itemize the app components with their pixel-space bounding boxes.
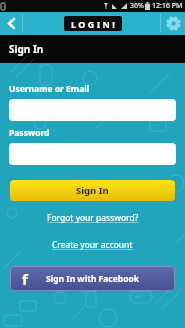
button[interactable]: Create your account [52, 239, 133, 251]
button[interactable]: f [10, 266, 175, 291]
button[interactable]: Forgot your password? [47, 212, 139, 224]
button[interactable] [9, 143, 176, 165]
staticText: L O G I N ! [71, 18, 115, 30]
staticText: Sign In [76, 184, 109, 197]
button[interactable] [9, 99, 176, 121]
staticText: Username or Email [9, 83, 90, 95]
staticText: f [22, 269, 28, 289]
staticText: Sign In with Facebook [46, 273, 140, 285]
staticText: 36% [130, 1, 144, 11]
button[interactable] [0, 12, 22, 35]
staticText: Sign In [9, 42, 44, 56]
staticText: 12:16 PM [152, 1, 183, 11]
button[interactable]: Sign In [10, 180, 175, 201]
staticText: Password [9, 127, 50, 139]
button[interactable] [161, 12, 185, 35]
